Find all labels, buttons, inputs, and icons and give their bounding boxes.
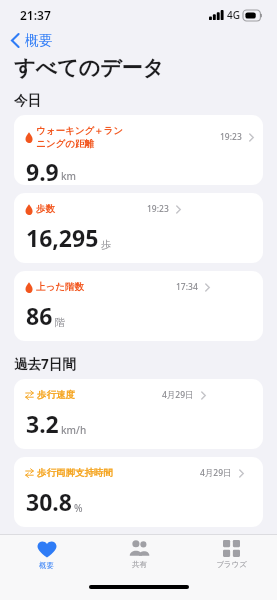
staticText: 17:34 <box>176 281 198 293</box>
staticText: 歩行両脚支持時間 <box>37 467 113 479</box>
staticText: すべてのデータ <box>14 55 164 81</box>
staticText: 上った階数 <box>36 281 84 293</box>
button[interactable]: 共有 <box>93 535 185 583</box>
staticText: % <box>74 501 83 515</box>
staticText: 4月29日 <box>162 389 194 401</box>
button[interactable]: 歩数 <box>14 193 263 263</box>
staticText: 9.9 <box>26 156 59 185</box>
staticText: 概要 <box>39 561 54 570</box>
staticText: 共有 <box>132 560 147 569</box>
staticText: 過去7日間 <box>14 355 76 373</box>
staticText: 21:37 <box>20 7 51 23</box>
button[interactable]: ブラウズ <box>185 535 277 583</box>
button[interactable]: ウォーキング＋ランニングの距離 <box>14 115 263 185</box>
staticText: km/h <box>61 423 87 437</box>
staticText: 19:23 <box>220 131 242 143</box>
staticText: 概要 <box>25 32 52 49</box>
staticText: 16,295 <box>26 222 99 253</box>
staticText: 歩行速度 <box>37 389 75 401</box>
staticText: 30.8 <box>26 486 72 517</box>
button[interactable]: 歩行速度 <box>14 379 263 449</box>
staticText: 86 <box>26 300 53 331</box>
staticText: 今日 <box>14 92 41 109</box>
staticText: 4G <box>227 8 240 22</box>
staticText: 4月29日 <box>200 467 232 479</box>
staticText: 3.2 <box>26 408 59 439</box>
button[interactable]: 概要 <box>0 535 93 583</box>
staticText: 19:23 <box>147 203 169 215</box>
button[interactable]: 概要 <box>0 30 62 51</box>
staticText: 歩数 <box>36 203 55 215</box>
staticText: km <box>61 169 77 183</box>
staticText: 階 <box>55 316 65 329</box>
button[interactable]: 歩行両脚支持時間 <box>14 457 263 527</box>
staticText: ウォーキング＋ランニングの距離 <box>36 125 128 149</box>
staticText: 歩 <box>101 238 111 251</box>
button[interactable]: 上った階数 <box>14 271 263 341</box>
staticText: ブラウズ <box>216 560 247 569</box>
